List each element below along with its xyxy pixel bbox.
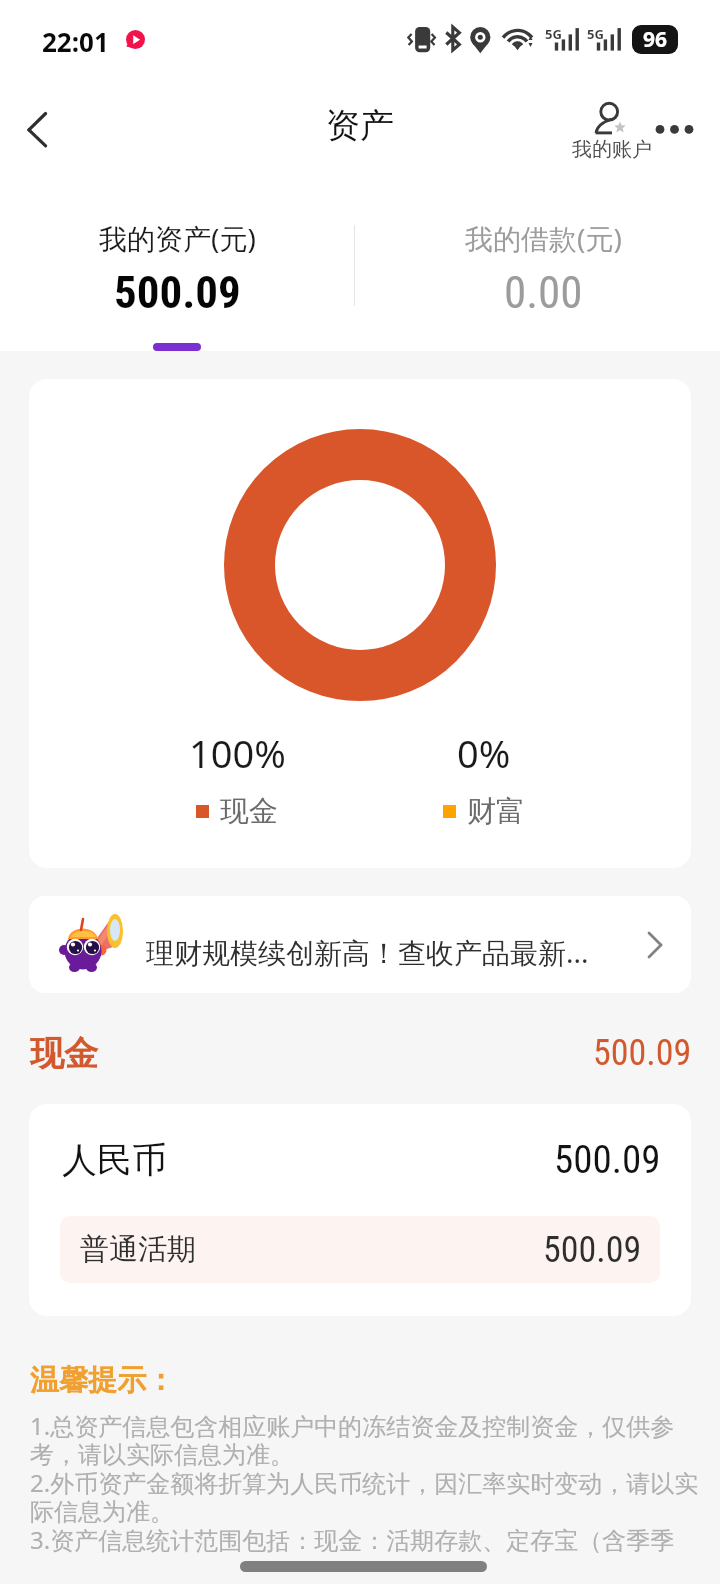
button[interactable]: 人民币 bbox=[62, 1104, 661, 1216]
staticText: 我的借款(元) bbox=[465, 219, 622, 257]
button[interactable]: 普通活期 bbox=[80, 1216, 642, 1283]
staticText: 5G bbox=[545, 25, 562, 43]
staticText: 500.09 bbox=[114, 266, 241, 319]
staticText: 温馨提示： bbox=[30, 1362, 175, 1399]
button[interactable]: Back bbox=[4, 94, 56, 146]
staticText: 现金 bbox=[30, 1032, 98, 1075]
button[interactable]: 理财规模续创新高！查收产品最新... bbox=[29, 896, 691, 993]
staticText: 1.总资产信息包含相应账户中的冻结资金及控制资金，仅供参 考，请以实际信息为准。… bbox=[30, 1409, 699, 1556]
button[interactable]: 我的账户 bbox=[566, 88, 654, 164]
staticText: 资产 bbox=[326, 104, 394, 147]
staticText: 500.09 bbox=[543, 1229, 642, 1271]
button[interactable]: More options bbox=[646, 88, 702, 144]
staticText: 我的账户 bbox=[572, 137, 652, 162]
staticText: 500.09 bbox=[554, 1137, 661, 1183]
staticText: 22:01 bbox=[42, 24, 109, 59]
staticText: 理财规模续创新高！查收产品最新... bbox=[146, 933, 589, 971]
staticText: 500.09 bbox=[593, 1032, 692, 1074]
staticText: 100% bbox=[189, 727, 286, 779]
staticText: 现金 bbox=[220, 793, 278, 830]
staticText: 0.00 bbox=[504, 266, 583, 319]
staticText: 人民币 bbox=[62, 1138, 167, 1182]
staticText: 财富 bbox=[467, 793, 525, 830]
staticText: 5G bbox=[587, 25, 604, 43]
staticText: 0% bbox=[457, 727, 511, 779]
staticText: 我的资产(元) bbox=[99, 219, 256, 257]
staticText: 普通活期 bbox=[80, 1231, 196, 1268]
staticText: 96 bbox=[643, 25, 668, 54]
